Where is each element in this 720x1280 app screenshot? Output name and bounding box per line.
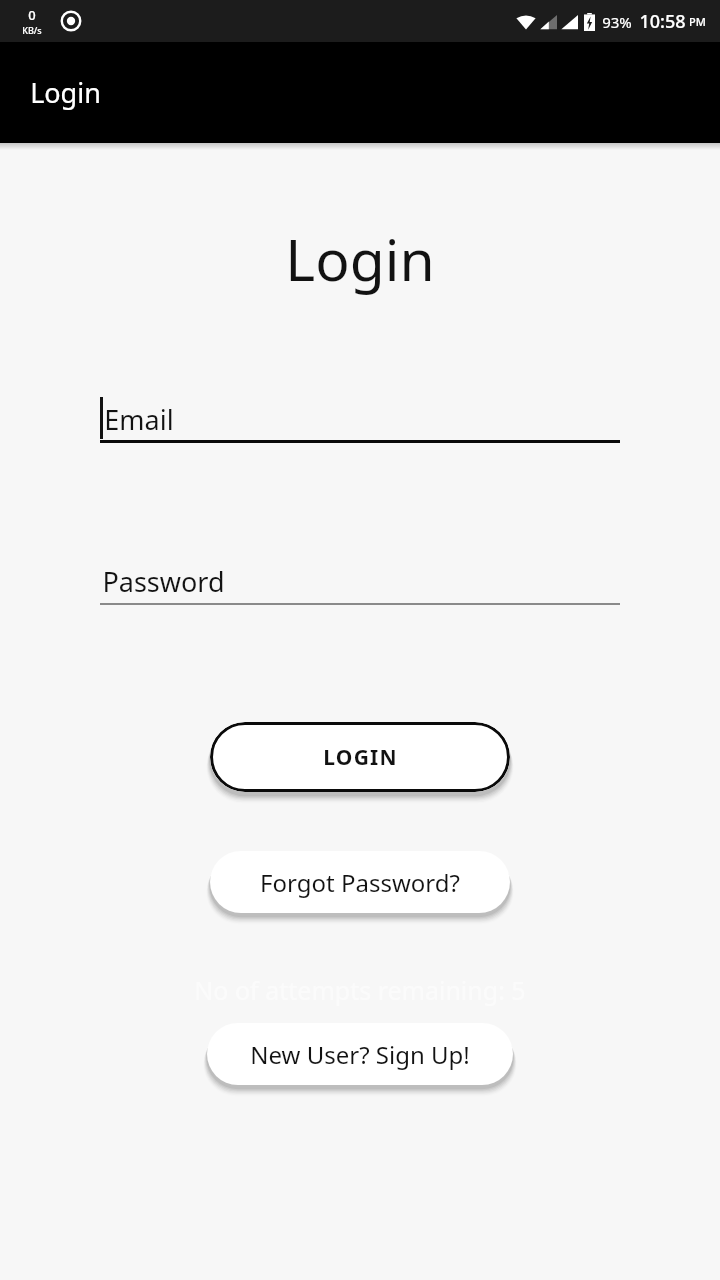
staticText: 93% xyxy=(602,12,632,32)
staticText: PM xyxy=(689,14,706,29)
staticText: Login xyxy=(30,74,101,111)
button[interactable]: Email xyxy=(100,395,620,443)
button[interactable]: LOGIN xyxy=(210,722,510,792)
staticText: 10:58 xyxy=(639,9,686,34)
staticText: 0 xyxy=(28,6,36,24)
staticText: KB/s xyxy=(22,24,42,36)
button[interactable]: New User? Sign Up! xyxy=(207,1023,513,1085)
staticText: LOGIN xyxy=(323,743,398,772)
button[interactable]: Forgot Password? xyxy=(210,851,510,913)
staticText: Password xyxy=(102,563,225,600)
staticText: Forgot Password? xyxy=(260,866,460,899)
staticText: New User? Sign Up! xyxy=(250,1038,470,1071)
staticText: Email xyxy=(104,401,174,438)
staticText: Login xyxy=(285,220,435,298)
button[interactable]: Password xyxy=(100,557,620,605)
